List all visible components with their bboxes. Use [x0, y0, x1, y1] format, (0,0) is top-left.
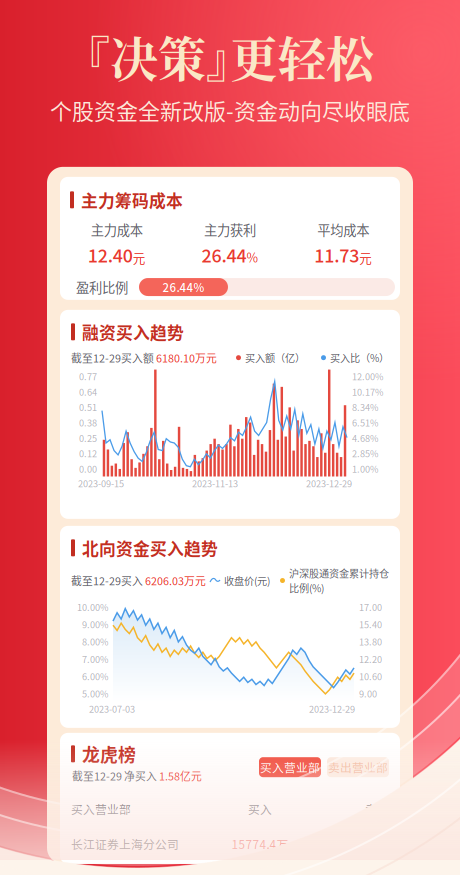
staticText: 4.68%	[352, 431, 378, 445]
staticText: 0.38	[79, 416, 97, 429]
staticText: 主力获利	[204, 220, 256, 239]
staticText: 『	[62, 21, 110, 90]
staticText: 决策	[110, 21, 206, 90]
staticText: 9.00	[359, 687, 377, 700]
staticText: 收盘价(元)	[224, 573, 270, 588]
staticText: 截至12-29 净买入	[72, 768, 159, 783]
staticText: 6180.10万元	[156, 350, 217, 365]
staticText: 8.00%	[82, 635, 108, 648]
button[interactable]: 买入营业部	[259, 757, 321, 777]
staticText: 买入比（%）	[330, 350, 389, 365]
staticText: 5.00%	[82, 687, 108, 700]
staticText: 26.44%	[201, 242, 258, 267]
staticText: 2023-12-29	[309, 702, 355, 715]
staticText: 融资买入趋势	[82, 320, 184, 344]
staticText: 更轻松	[230, 21, 374, 90]
staticText: 0.00	[365, 835, 389, 852]
staticText: 0.00	[79, 462, 97, 475]
staticText: 10.60	[359, 669, 382, 683]
staticText: 0.64	[79, 385, 97, 398]
staticText: 主力成本	[91, 220, 143, 239]
staticText: 6.51%	[352, 416, 378, 429]
staticText: 2023-12-29	[306, 476, 352, 490]
staticText: 个股资金全新改版-资金动向尽收眼底	[50, 94, 410, 126]
staticText: 10.17%	[352, 385, 383, 398]
staticText: 长江证券上海分公司	[71, 835, 179, 852]
staticText: 1.58亿元	[159, 768, 202, 783]
staticText: 截至12-29买入额	[71, 350, 156, 365]
staticText: 主力筹码成本	[81, 188, 183, 212]
staticText: 卖出营业部	[328, 759, 388, 776]
staticText: 平均成本	[317, 220, 369, 239]
staticText: 0.51	[79, 400, 97, 414]
staticText: 龙虎榜	[82, 741, 136, 767]
staticText: 17.00	[359, 600, 382, 613]
staticText: 买入营业部	[260, 759, 320, 776]
staticText: 12.40元	[88, 242, 146, 267]
staticText: 2023-09-15	[78, 476, 124, 490]
staticText: 2023-07-03	[89, 702, 135, 715]
staticText: 26.44%	[162, 279, 204, 295]
staticText: 10.00%	[77, 600, 108, 613]
button[interactable]: 卖出营业部	[327, 757, 389, 777]
staticText: 北向资金买入趋势	[82, 536, 218, 560]
staticText: 6.00%	[82, 669, 108, 683]
staticText: 0.25	[79, 431, 97, 445]
staticText: 盈利比例	[76, 277, 128, 297]
staticText: 沪深股通资金累计持仓比例(%)	[289, 566, 389, 595]
staticText: 买入营业部	[71, 800, 131, 817]
staticText: 』	[206, 21, 254, 90]
staticText: 12.20	[359, 652, 382, 665]
staticText: 9.00%	[82, 617, 108, 631]
staticText: 15774.4万	[231, 835, 288, 852]
staticText: 11.73元	[314, 242, 372, 267]
staticText: 卖出	[365, 800, 389, 817]
staticText: 买入额（亿）	[245, 350, 305, 365]
staticText: 12.00%	[352, 369, 383, 383]
staticText: 0.12	[79, 447, 97, 460]
staticText: 买入	[248, 800, 272, 817]
staticText: 0.77	[79, 369, 97, 383]
staticText: 截至12-29买入	[71, 573, 145, 588]
staticText: 7.00%	[82, 652, 108, 665]
staticText: 2.85%	[352, 447, 378, 460]
staticText: 15.40	[359, 617, 382, 631]
staticText: 13.80	[359, 635, 382, 648]
staticText: 2023-11-13	[192, 476, 238, 490]
staticText: 1.00%	[352, 462, 378, 475]
staticText: 6206.03万元	[145, 573, 206, 588]
staticText: 8.34%	[352, 400, 378, 414]
